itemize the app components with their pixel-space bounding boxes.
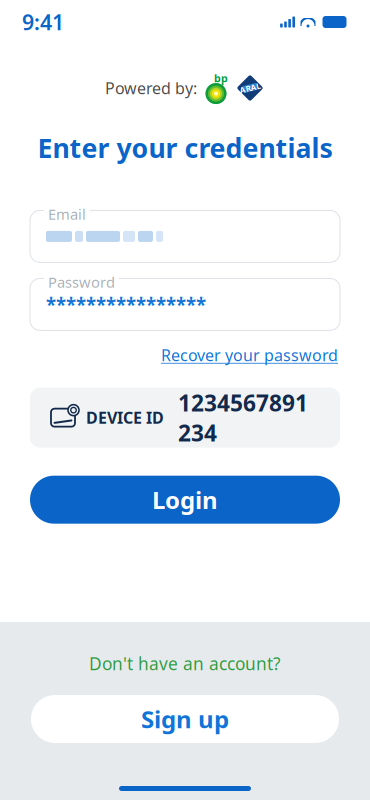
staticText: **************** — [46, 292, 206, 317]
button[interactable]: Login — [30, 476, 340, 524]
button[interactable]: Sign up — [31, 695, 339, 743]
staticText: Password — [48, 272, 115, 292]
staticText: ARAL — [239, 83, 260, 93]
staticText: Login — [152, 484, 218, 516]
staticText: Enter your credentials — [37, 130, 332, 165]
staticText: Powered by: — [105, 77, 197, 99]
staticText: 9:41 — [22, 8, 64, 36]
staticText: bp — [214, 71, 228, 85]
staticText: 1234567891234 — [178, 388, 308, 448]
staticText: Email — [48, 204, 86, 224]
staticText: Don't have an account? — [89, 652, 281, 675]
button[interactable]: Recover your password — [161, 344, 338, 366]
staticText: Recover your password — [161, 344, 338, 366]
staticText: Sign up — [141, 703, 229, 735]
staticText: DEVICE ID — [86, 407, 164, 428]
